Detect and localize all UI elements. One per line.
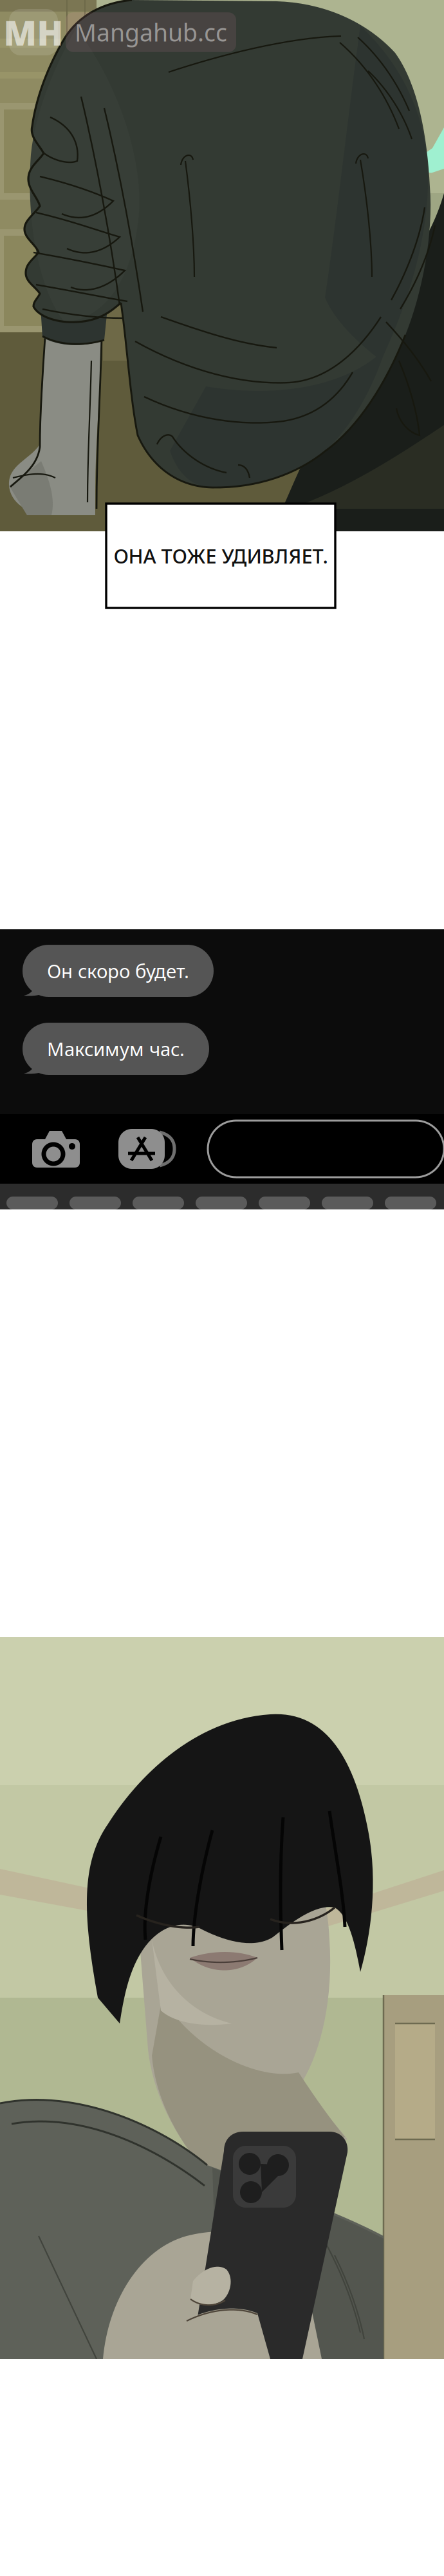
staticText: Он скоро будет. — [47, 958, 189, 983]
button[interactable]: Camera — [31, 1129, 81, 1169]
button[interactable]: Message field — [208, 1121, 444, 1177]
button[interactable]: App Store — [118, 1129, 176, 1169]
staticText: ОНА ТОЖЕ УДИВЛЯЕТ. — [114, 543, 328, 569]
staticText: Mangahub.cc — [75, 16, 227, 48]
staticText: MH — [4, 9, 63, 55]
staticText: Максимум час. — [47, 1036, 185, 1061]
